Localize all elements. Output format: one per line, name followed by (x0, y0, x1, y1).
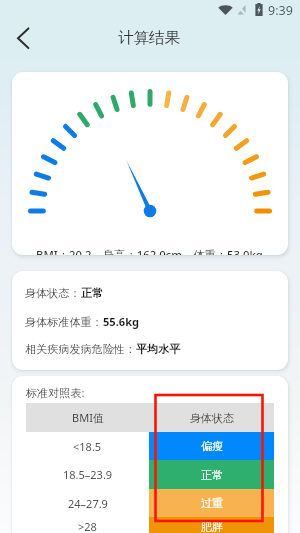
staticText: 平均水平 (136, 342, 181, 356)
staticText: BMI：20.2 身高：162.0cm 体重：53.0kg (36, 247, 263, 255)
staticText: >28 (78, 519, 97, 533)
staticText: 身体状态： (25, 286, 81, 300)
staticText: 相关疾病发病危险性： (25, 342, 136, 356)
staticText: BMI值 (72, 410, 104, 425)
staticText: 计算结果 (118, 28, 180, 48)
staticText: 9:39 (268, 2, 293, 19)
staticText: 过重 (201, 496, 223, 510)
staticText: 标准对照表: (26, 385, 85, 400)
button[interactable]: Back (11, 25, 34, 48)
staticText: 正常 (81, 286, 104, 300)
staticText: 正常 (201, 468, 223, 482)
staticText: 肥胖 (201, 520, 223, 533)
staticText: 55.6kg (103, 314, 140, 329)
staticText: <18.5 (73, 439, 102, 454)
staticText: 身体状态 (190, 411, 234, 425)
staticText: 24–27.9 (68, 496, 108, 511)
staticText: 身体标准体重： (25, 315, 103, 329)
staticText: 18.5–23.9 (63, 467, 113, 482)
staticText: 偏瘦 (201, 439, 223, 453)
